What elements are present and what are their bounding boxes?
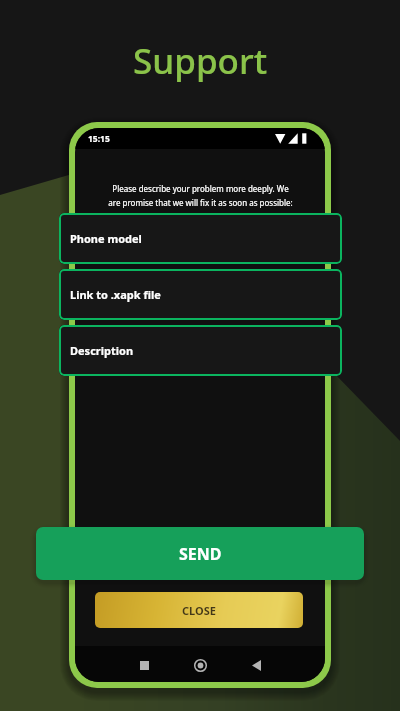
button[interactable]: Link to .xapk file — [59, 269, 342, 320]
staticText: Phone model — [70, 231, 142, 246]
button[interactable]: Home — [186, 651, 214, 679]
staticText: CLOSE — [182, 603, 216, 618]
staticText: SEND — [179, 543, 222, 565]
button[interactable]: Recents — [130, 651, 158, 679]
staticText: Please describe your problem more deeply… — [108, 183, 293, 208]
button[interactable]: Phone model — [59, 213, 342, 264]
staticText: 15:15 — [88, 133, 110, 145]
staticText: Link to .xapk file — [70, 287, 161, 302]
button[interactable]: CLOSE — [95, 592, 303, 628]
staticText: Description — [70, 343, 134, 358]
button[interactable]: Back — [242, 651, 270, 679]
button[interactable]: SEND — [36, 527, 364, 580]
staticText: Support — [133, 37, 268, 85]
button[interactable]: Description — [59, 325, 342, 376]
